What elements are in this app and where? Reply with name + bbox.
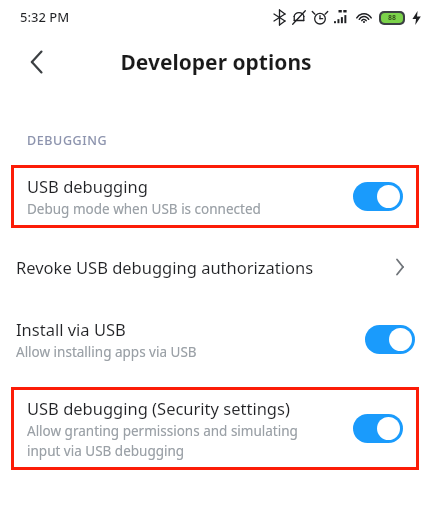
- staticText: USB debugging (Security settings): [27, 397, 290, 419]
- staticText: Developer options: [120, 48, 312, 77]
- button[interactable]: Toggle: [353, 414, 403, 443]
- staticText: Allow granting permissions and simulatin…: [27, 422, 298, 460]
- staticText: 5:32 PM: [20, 8, 70, 26]
- staticText: DEBUGGING: [27, 132, 108, 149]
- button[interactable]: Install via USB: [0, 308, 431, 371]
- button[interactable]: Open: [385, 252, 415, 282]
- staticText: Install via USB: [16, 318, 126, 340]
- staticText: Debug mode when USB is connected: [27, 200, 261, 218]
- button[interactable]: Toggle: [365, 325, 415, 354]
- button[interactable]: Back: [14, 39, 60, 85]
- staticText: Allow installing apps via USB: [16, 343, 197, 361]
- button[interactable]: USB debugging: [11, 165, 419, 228]
- staticText: 88: [388, 13, 397, 23]
- button[interactable]: USB debugging (Security settings): [11, 387, 419, 470]
- staticText: USB debugging: [27, 175, 148, 197]
- button[interactable]: Toggle: [353, 182, 403, 211]
- button[interactable]: Revoke USB debugging authorizations: [0, 242, 431, 292]
- staticText: Revoke USB debugging authorizations: [16, 256, 314, 278]
